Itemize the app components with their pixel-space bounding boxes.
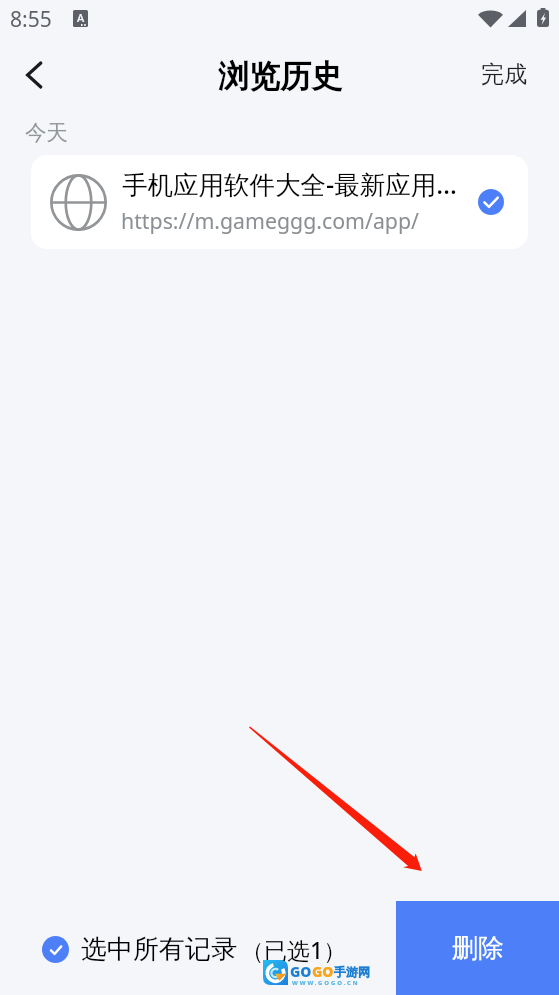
- button[interactable]: 手机应用软件大全-最新应用…: [31, 155, 528, 249]
- staticText: 手机应用软件大全-最新应用…: [122, 167, 457, 202]
- button[interactable]: 完成: [466, 48, 542, 100]
- staticText: （已选1）: [241, 934, 347, 965]
- staticText: GO: [290, 962, 312, 981]
- staticText: 完成: [481, 60, 527, 89]
- staticText: 8:55: [10, 5, 52, 34]
- button[interactable]: 删除: [396, 901, 559, 995]
- staticText: 手游网: [334, 964, 370, 979]
- staticText: 今天: [25, 119, 68, 146]
- staticText: GO: [312, 962, 334, 981]
- staticText: A: [77, 10, 85, 25]
- staticText: https://m.gameggg.com/app/: [121, 206, 419, 235]
- staticText: 浏览历史: [218, 57, 342, 96]
- staticText: WWW.GOGO.CN: [292, 979, 360, 987]
- staticText: 选中所有记录: [81, 933, 237, 966]
- button[interactable]: 选中所有记录: [42, 921, 347, 977]
- staticText: 删除: [452, 932, 504, 965]
- button[interactable]: Back: [7, 46, 65, 104]
